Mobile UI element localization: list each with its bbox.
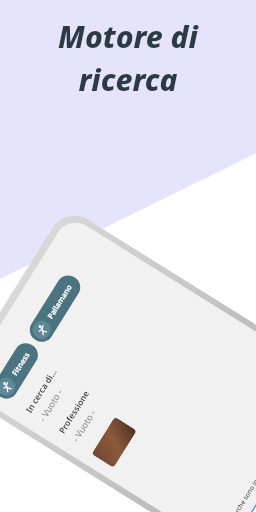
staticText: Fitness bbox=[9, 350, 32, 377]
button[interactable]: Pallamano bbox=[25, 271, 85, 346]
staticText: * Le ricerche sono indipendenti dalla tu… bbox=[219, 401, 256, 512]
staticText: Pallamano bbox=[45, 282, 74, 321]
staticText: ricerca bbox=[78, 59, 178, 100]
staticText: - Vuoto - bbox=[36, 386, 65, 423]
staticText: Motore di bbox=[58, 16, 198, 57]
button[interactable]: FILTRO bbox=[234, 394, 256, 512]
staticText: In cerca di... bbox=[23, 366, 60, 415]
staticText: - Vuoto - bbox=[69, 407, 98, 444]
button[interactable]: Fitness bbox=[0, 339, 42, 403]
staticText: Professione bbox=[56, 388, 92, 436]
